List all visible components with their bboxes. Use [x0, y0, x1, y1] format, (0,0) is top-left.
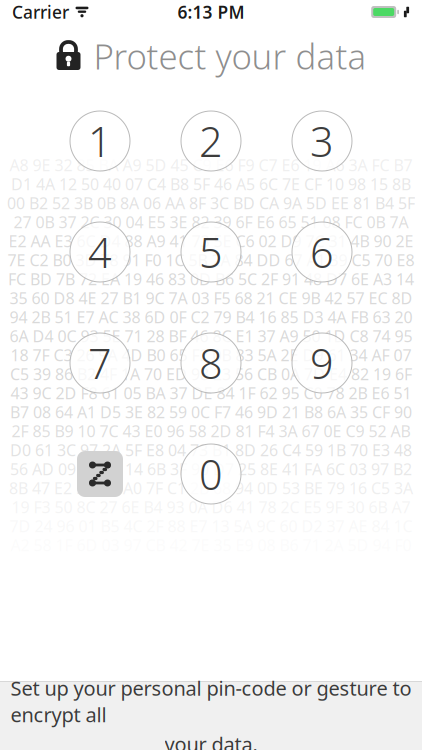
staticText: Protect your data: [93, 33, 366, 79]
button[interactable]: 5: [181, 222, 241, 282]
staticText: D0 61 3C 97 2A 5F E8 04 73 B1 8D 26 C4 5…: [10, 439, 412, 461]
staticText: 8: [199, 336, 223, 390]
button[interactable]: 8: [181, 333, 241, 393]
button[interactable]: 3: [292, 111, 352, 171]
staticText: 8B 47 E2 5D 36 A0 7F C1 2B 68 94 0D 53 B…: [9, 477, 413, 499]
staticText: 7: [88, 336, 112, 390]
button[interactable]: 2: [181, 111, 241, 171]
button[interactable]: 7: [70, 333, 130, 393]
staticText: A8 9E 32 85 BA A9 5D 45 C9 E6 F9 C7 E6 1…: [9, 154, 412, 176]
staticText: 5: [199, 225, 223, 279]
staticText: 18 7F C3 26 9A 4D B0 65 F2 0B 83 5A 2E D…: [10, 344, 411, 366]
button[interactable]: Switch to gesture pattern: [70, 444, 130, 504]
staticText: Set up your personal pin-code or gesture…: [10, 675, 411, 728]
staticText: 6: [310, 225, 334, 279]
staticText: 94 2B 51 E7 AC 38 6D 0F C2 79 B4 16 85 D…: [9, 306, 412, 328]
button[interactable]: 6: [292, 222, 352, 282]
staticText: 43 9C 2D F8 61 05 BA 37 DE 84 1F 62 95 C…: [10, 382, 411, 404]
staticText: FC BD 7B 72 EA 19 46 83 0D B6 5C 2F 91 4…: [8, 268, 414, 290]
staticText: 0: [199, 447, 223, 501]
staticText: B7 08 64 A1 D5 3E 82 59 0C F7 46 9D 21 B…: [10, 401, 412, 423]
button[interactable]: 0: [181, 444, 241, 504]
staticText: Carrier: [12, 0, 69, 23]
staticText: 3: [310, 114, 334, 168]
staticText: 7E C2 B0 3D 78 91 F0 1C 5B 2A 84 DD 67 A…: [7, 249, 414, 271]
staticText: 27 0B 37 2C 30 04 E5 3E 82 39 6F E6 65 5…: [13, 211, 408, 233]
staticText: 6A D4 0C 93 5E 71 28 BF 46 8C E1 37 A9 5…: [9, 325, 412, 347]
staticText: 4: [88, 225, 112, 279]
staticText: 2: [199, 114, 223, 168]
staticText: 00 B2 52 3B 0B 8A 06 AA 8F 3C BD CA 9A 5…: [7, 192, 415, 214]
staticText: E2 AA E3 6C D4 88 A9 41 73 5E C6 02 D9 7…: [8, 230, 413, 252]
staticText: 9: [310, 336, 334, 390]
staticText: 6:13 PM: [177, 0, 244, 23]
staticText: D1 4A 12 50 40 07 C4 B8 5F 46 A5 6C 7E C…: [11, 173, 411, 195]
staticText: 35 60 D8 4E 27 B1 9C 7A 03 F5 68 21 CE 9…: [9, 287, 412, 309]
button[interactable]: 4: [70, 222, 130, 282]
staticText: C5 39 86 B2 4F 1A 70 ED 98 23 56 CB 0A 7…: [10, 363, 412, 385]
button[interactable]: 9: [292, 333, 352, 393]
staticText: 1: [88, 114, 112, 168]
staticText: 2F 85 B9 10 7C 43 E0 96 58 2D 81 F4 3A 6…: [11, 420, 410, 442]
staticText: your data.: [164, 731, 257, 750]
staticText: 56 AD 09 72 C8 14 6B 3F 90 D7 25 8E 41 F…: [10, 458, 412, 480]
staticText: 19 F3 50 8C 27 6E B4 93 0A D6 41 78 2C E…: [11, 496, 410, 518]
button[interactable]: 1: [70, 111, 130, 171]
